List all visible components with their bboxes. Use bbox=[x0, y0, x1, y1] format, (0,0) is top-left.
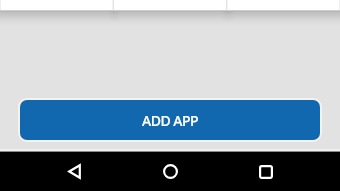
button[interactable]: Back bbox=[46, 152, 102, 191]
button[interactable]: Recent apps bbox=[238, 152, 294, 191]
button[interactable]: ADD APP bbox=[20, 100, 320, 140]
button[interactable]: Home bbox=[142, 152, 198, 191]
staticText: ADD APP bbox=[142, 111, 199, 130]
